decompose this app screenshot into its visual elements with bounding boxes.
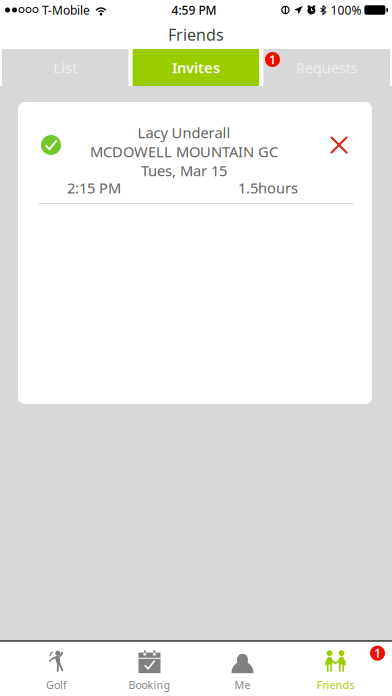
- staticText: Lacy Underall: [137, 123, 230, 142]
- staticText: 1.5hours: [238, 178, 298, 197]
- staticText: Friends: [168, 24, 224, 45]
- staticText: T-Mobile: [42, 2, 90, 18]
- staticText: Requests: [296, 58, 358, 77]
- button[interactable]: Requests: [263, 49, 390, 86]
- staticText: 1: [269, 51, 276, 67]
- staticText: Friends: [316, 678, 354, 692]
- staticText: Me: [234, 678, 250, 692]
- button[interactable]: Booking: [103, 642, 196, 696]
- staticText: 4:59 PM: [171, 2, 216, 18]
- button[interactable]: List: [2, 49, 129, 86]
- staticText: Golf: [46, 678, 67, 692]
- staticText: 1: [374, 645, 381, 661]
- staticText: 2:15 PM: [67, 178, 121, 197]
- staticText: Booking: [128, 678, 170, 692]
- button[interactable]: Me: [196, 642, 289, 696]
- staticText: 100%: [330, 2, 361, 18]
- staticText: Invites: [172, 58, 220, 77]
- staticText: MCDOWELL MOUNTAIN GC: [90, 142, 278, 161]
- button[interactable]: Invites: [133, 49, 259, 86]
- staticText: List: [53, 58, 77, 77]
- button[interactable]: Friends: [289, 642, 382, 696]
- button[interactable]: Golf: [10, 642, 103, 696]
- staticText: Tues, Mar 15: [141, 161, 227, 180]
